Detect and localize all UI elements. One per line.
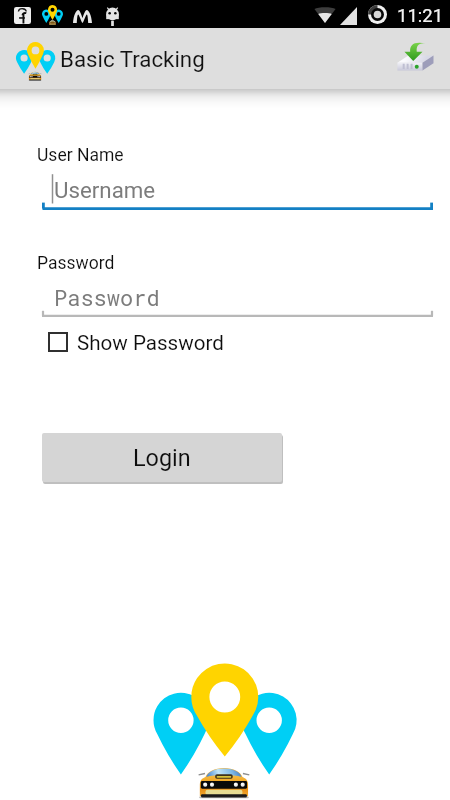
staticText: Username bbox=[54, 177, 156, 203]
staticText: User Name bbox=[37, 145, 124, 166]
button[interactable]: Password bbox=[42, 280, 433, 317]
staticText: Show Password bbox=[77, 331, 224, 355]
staticText: Password bbox=[37, 253, 115, 274]
button[interactable]: Show Password bbox=[42, 326, 224, 358]
staticText: Password bbox=[54, 283, 160, 312]
staticText: 11:21 bbox=[397, 5, 444, 27]
button[interactable]: Login bbox=[42, 433, 282, 482]
staticText: Basic Tracking bbox=[60, 46, 205, 72]
button[interactable]: Username bbox=[42, 172, 433, 210]
staticText: Login bbox=[133, 444, 191, 471]
button[interactable]: Save bbox=[391, 35, 439, 83]
